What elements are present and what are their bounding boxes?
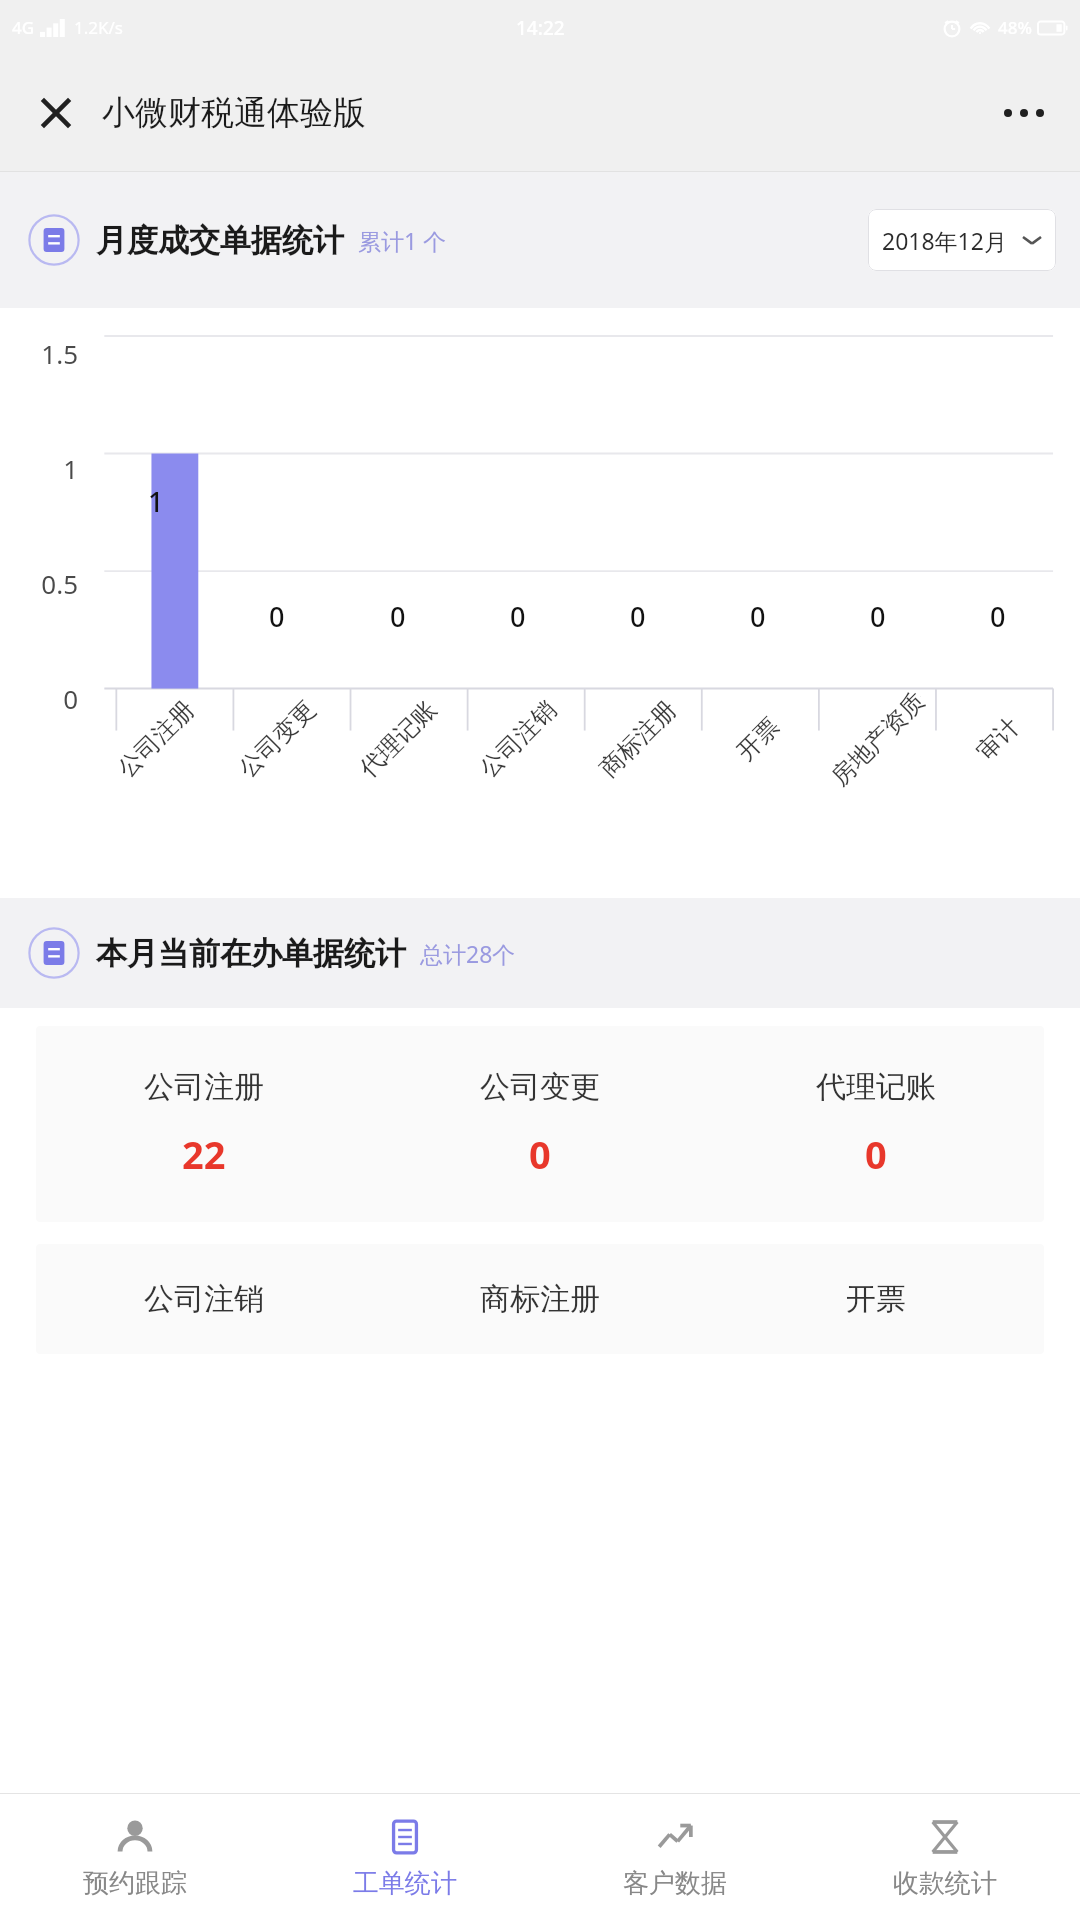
staticText: 0 [630, 598, 646, 635]
staticText: 公司注册 [144, 1068, 264, 1106]
staticText: 商标注册 [593, 694, 683, 784]
staticText: 0 [870, 598, 886, 635]
staticText: 公司变更 [480, 1068, 600, 1106]
staticText: 公司注销 [473, 694, 563, 784]
staticText: 1 [148, 483, 164, 520]
staticText: 0 [990, 598, 1006, 635]
staticText: 公司变更 [232, 694, 322, 784]
staticText: 0 [529, 1128, 551, 1180]
staticText: 0.5 [0, 566, 78, 601]
staticText: 月度成交单据统计 [96, 221, 344, 260]
staticText: 0 [390, 598, 406, 635]
button[interactable]: 客户数据 [540, 1794, 810, 1920]
button[interactable]: 公司变更 [372, 1026, 708, 1222]
staticText: 0 [0, 681, 78, 716]
button[interactable]: 收款统计 [810, 1794, 1080, 1920]
staticText: 累计1 个 [358, 225, 447, 256]
staticText: 14:22 [516, 15, 565, 41]
button[interactable]: 工单统计 [270, 1794, 540, 1920]
staticText: 0 [750, 598, 766, 635]
staticText: 总计28个 [420, 938, 516, 969]
staticText: 1.5 [0, 336, 78, 371]
staticText: 本月当前在办单据统计 [96, 934, 406, 973]
staticText: 工单统计 [353, 1867, 457, 1900]
staticText: 0 [510, 598, 526, 635]
button[interactable]: More options [992, 81, 1056, 145]
staticText: 开票 [730, 711, 786, 767]
staticText: 1 [0, 451, 78, 486]
button[interactable]: Close [28, 85, 84, 141]
button[interactable]: 商标注册 [372, 1244, 708, 1354]
staticText: 开票 [846, 1280, 906, 1318]
staticText: 客户数据 [623, 1867, 727, 1900]
staticText: 0 [269, 598, 285, 635]
staticText: 审计 [970, 711, 1026, 767]
button[interactable]: 公司注销 [36, 1244, 372, 1354]
staticText: 22 [182, 1128, 226, 1180]
staticText: 收款统计 [893, 1867, 997, 1900]
staticText: 2018年12月 [882, 225, 1007, 256]
staticText: 4G [12, 16, 35, 39]
button[interactable]: 公司注册 [36, 1026, 372, 1222]
button[interactable]: 预约跟踪 [0, 1794, 270, 1920]
staticText: 商标注册 [480, 1280, 600, 1318]
staticText: 0 [865, 1128, 887, 1180]
staticText: 预约跟踪 [83, 1867, 187, 1900]
staticText: 公司注销 [144, 1280, 264, 1318]
button[interactable]: 代理记账 [708, 1026, 1044, 1222]
button[interactable]: 2018年12月 [868, 209, 1056, 271]
button[interactable]: 开票 [708, 1244, 1044, 1354]
staticText: 小微财税通体验版 [102, 92, 366, 134]
staticText: 1.2K/s [74, 16, 123, 39]
staticText: 房地产资质代办 [825, 686, 931, 792]
staticText: 代理记账 [816, 1068, 936, 1106]
staticText: 代理记账 [353, 694, 443, 784]
staticText: 48% [998, 16, 1032, 39]
staticText: 公司注册 [111, 694, 201, 784]
